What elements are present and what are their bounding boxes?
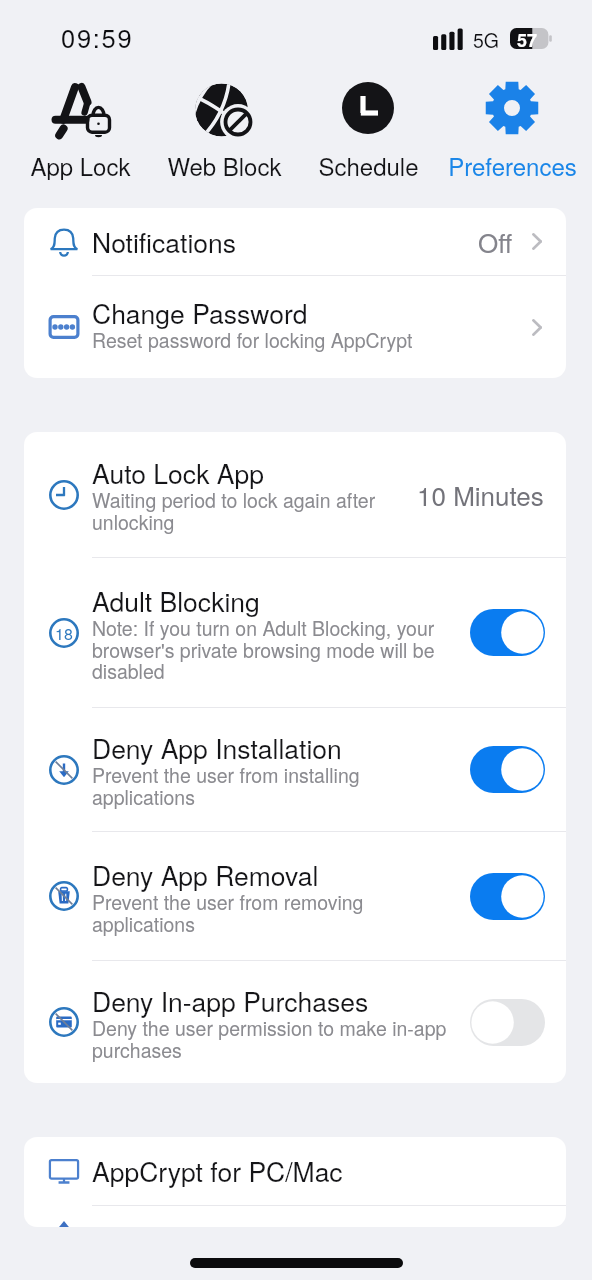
staticText: Deny the user permission to make in-app …	[92, 1014, 452, 1063]
button[interactable]: Schedule	[296, 80, 440, 180]
button[interactable]: AppCrypt for PC/Mac	[24, 1137, 566, 1205]
button[interactable]: Deny In-app Purchases	[24, 961, 566, 1083]
button[interactable]: Deny App Removal	[24, 832, 566, 960]
staticText: Deny App Installation	[92, 729, 342, 767]
staticText: 10 Minutes	[417, 476, 544, 513]
staticText: Adult Blocking	[92, 582, 260, 620]
staticText: Reset password for locking AppCrypt	[92, 326, 413, 354]
staticText: Change Password	[92, 294, 308, 332]
staticText: Schedule	[318, 148, 419, 180]
staticText: Prevent the user from removing applicati…	[92, 888, 368, 937]
button[interactable]: App Lock	[9, 80, 152, 180]
button[interactable]: Preferences	[440, 80, 584, 180]
button[interactable]: Enabled	[470, 746, 545, 793]
staticText: App Lock	[30, 148, 131, 180]
staticText: Auto Lock App	[92, 454, 264, 492]
button[interactable]: Auto Lock App	[24, 432, 566, 557]
staticText: 09:59	[61, 19, 134, 56]
staticText: 57	[517, 27, 538, 53]
staticText: Waiting period to lock again after unloc…	[92, 486, 382, 535]
staticText: Prevent the user from installing applica…	[92, 761, 364, 810]
staticText: Preferences	[448, 148, 577, 180]
staticText: Deny App Removal	[92, 856, 319, 894]
button[interactable]: Enabled	[470, 609, 545, 656]
staticText: Note: If you turn on Adult Blocking, you…	[92, 614, 440, 684]
staticText: Web Block	[167, 148, 282, 180]
staticText: 5G	[473, 26, 500, 54]
button[interactable]: Deny App Installation	[24, 708, 566, 831]
staticText: Off	[478, 223, 513, 260]
staticText: Deny In-app Purchases	[92, 982, 369, 1020]
button[interactable]: Change Password	[24, 276, 566, 378]
staticText: AppCrypt for PC/Mac	[92, 1152, 343, 1190]
button[interactable]: Enabled	[470, 873, 545, 920]
button[interactable]: Web Block	[152, 80, 296, 180]
staticText: 18	[55, 622, 73, 645]
button[interactable]: Notifications	[24, 208, 566, 275]
button[interactable]: Disabled	[470, 999, 545, 1046]
button[interactable]: 18	[24, 558, 566, 707]
staticText: Notifications	[92, 223, 237, 261]
